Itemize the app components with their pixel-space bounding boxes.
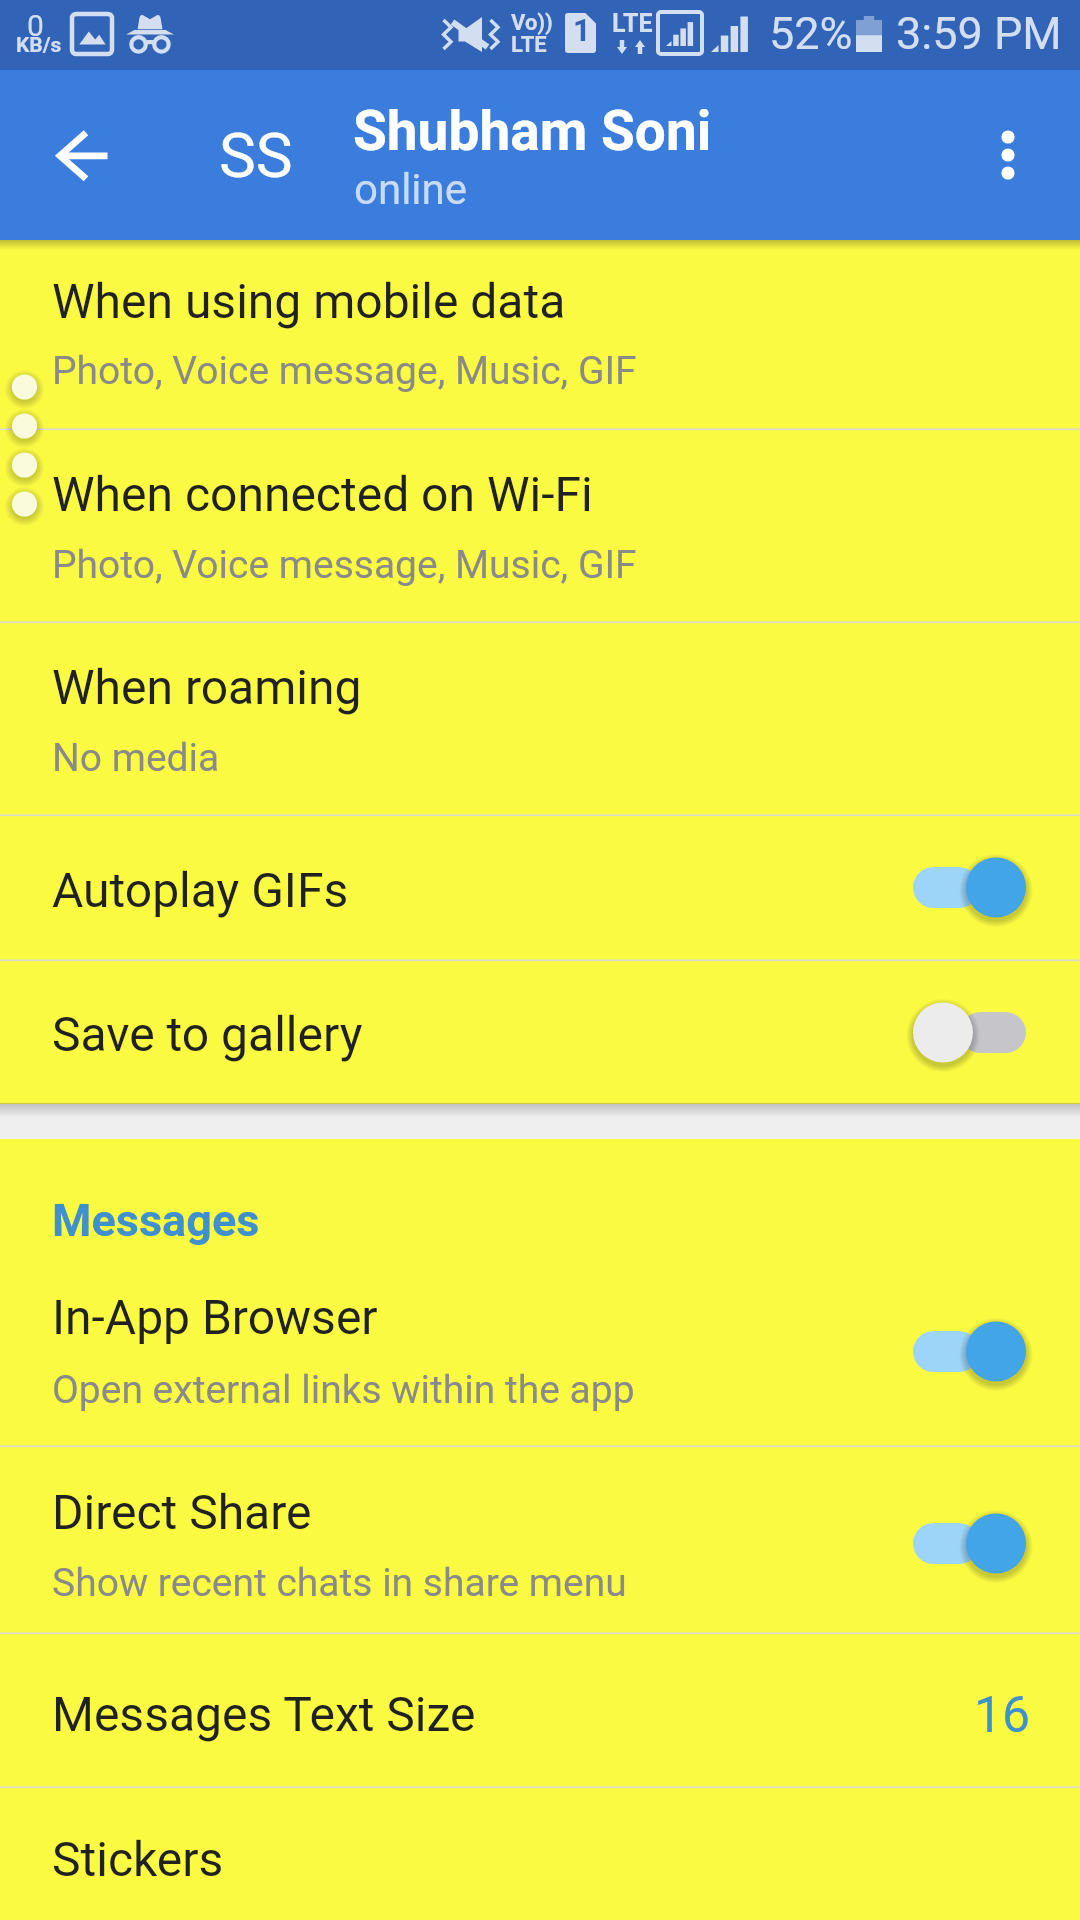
button[interactable]: Autoplay GIFs (0, 816, 1080, 959)
staticText: KB/s (16, 33, 62, 58)
staticText: 52% (769, 7, 853, 60)
staticText: Stickers (52, 1831, 224, 1887)
staticText: LTE (511, 32, 547, 58)
staticText: 0 (27, 8, 44, 43)
staticText: Messages (52, 1194, 260, 1247)
staticText: LTE (612, 9, 653, 38)
staticText: Vo)) (511, 10, 553, 36)
staticText: When roaming (52, 659, 362, 715)
button[interactable]: In-App Browser (0, 1245, 1080, 1445)
staticText: Open external links within the app (52, 1367, 635, 1413)
staticText: Shubham Soni (353, 99, 712, 163)
staticText: No media (52, 735, 220, 781)
staticText: 1 (573, 12, 591, 48)
button[interactable]: When using mobile data (0, 242, 1080, 428)
button[interactable]: When roaming (0, 623, 1080, 814)
button[interactable]: Direct Share (0, 1447, 1080, 1632)
staticText: 3:59 PM (896, 7, 1062, 60)
button[interactable]: Messages Text Size (0, 1634, 1080, 1786)
staticText: Photo, Voice message, Music, GIF (52, 348, 637, 394)
staticText: Direct Share (52, 1484, 312, 1540)
staticText: When using mobile data (52, 273, 566, 329)
staticText: Autoplay GIFs (52, 862, 349, 918)
button[interactable]: Back (35, 109, 131, 205)
staticText: When connected on Wi-Fi (52, 466, 593, 522)
button[interactable]: Save to gallery (0, 961, 1080, 1104)
button[interactable]: When connected on Wi-Fi (0, 430, 1080, 621)
button[interactable]: More options (962, 109, 1054, 201)
staticText: 16 (974, 1686, 1031, 1745)
button[interactable]: Stickers (0, 1788, 1080, 1920)
staticText: Show recent chats in share menu (52, 1560, 627, 1606)
staticText: Save to gallery (52, 1006, 363, 1062)
staticText: Messages Text Size (52, 1686, 476, 1742)
staticText: Photo, Voice message, Music, GIF (52, 542, 637, 588)
staticText: SS (219, 119, 293, 192)
staticText: online (354, 165, 468, 214)
staticText: In-App Browser (52, 1289, 378, 1345)
